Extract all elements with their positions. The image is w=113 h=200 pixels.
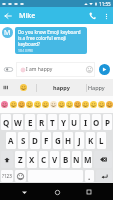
- button[interactable]: .: [85, 170, 94, 182]
- staticText: D: [32, 135, 38, 146]
- button[interactable]: H: [64, 132, 73, 149]
- staticText: K: [88, 135, 94, 146]
- button[interactable]: Y: [59, 114, 68, 130]
- staticText: Mike: [19, 11, 36, 21]
- staticText: T: [50, 117, 55, 128]
- button[interactable]: Shift: [1, 151, 13, 168]
- button[interactable]: Emoji: [97, 96, 105, 113]
- staticText: C: [41, 154, 47, 165]
- button[interactable]: Emoji: [25, 96, 33, 113]
- button[interactable]: Emoji: [15, 170, 26, 182]
- button[interactable]: Z: [15, 151, 25, 168]
- button[interactable]: Emoji: [57, 96, 65, 113]
- staticText: Y: [61, 117, 67, 128]
- button[interactable]: Emoji: [49, 96, 57, 113]
- button[interactable]: [11, 79, 36, 96]
- staticText: I am happy: [26, 66, 53, 73]
- button[interactable]: W: [13, 114, 23, 130]
- staticText: O: [93, 117, 100, 128]
- staticText: X: [29, 154, 35, 165]
- staticText: B: [63, 154, 69, 165]
- staticText: Do you know Emoji keyboard is a free col…: [18, 29, 81, 47]
- staticText: E: [28, 117, 33, 128]
- button[interactable]: O: [92, 114, 101, 130]
- button[interactable]: U: [70, 114, 79, 130]
- button[interactable]: More options: [100, 10, 112, 22]
- button[interactable]: Back: [16, 184, 32, 200]
- button[interactable]: Switch keyboard: [0, 60, 16, 79]
- staticText: I: [84, 117, 88, 128]
- staticText: F: [44, 135, 49, 146]
- button[interactable]: Emoji: [81, 96, 89, 113]
- staticText: 10:13 PM: [18, 48, 33, 53]
- staticText: ?123: [2, 173, 12, 179]
- button[interactable]: Emoji: [17, 96, 25, 113]
- button[interactable]: E: [25, 114, 35, 130]
- staticText: G: [55, 135, 61, 146]
- staticText: U: [71, 117, 78, 128]
- staticText: M: [84, 154, 92, 165]
- button[interactable]: Emoji: [73, 96, 81, 113]
- staticText: H: [65, 135, 72, 146]
- button[interactable]: Emoji: [9, 96, 17, 113]
- staticText: V: [52, 154, 58, 165]
- button[interactable]: S: [18, 132, 28, 149]
- staticText: .: [88, 171, 91, 182]
- button[interactable]: Emoji: [65, 96, 73, 113]
- button[interactable]: G: [53, 132, 62, 149]
- staticText: L: [99, 135, 104, 146]
- button[interactable]: Enter: [96, 170, 112, 182]
- button[interactable]: K: [86, 132, 95, 149]
- button[interactable]: V: [50, 151, 59, 168]
- button[interactable]: Backspace: [94, 151, 112, 168]
- button[interactable]: J: [75, 132, 84, 149]
- staticText: N: [73, 154, 80, 165]
- button[interactable]: D: [30, 132, 40, 149]
- staticText: happy: [53, 84, 70, 91]
- button[interactable]: Call: [85, 8, 100, 23]
- button[interactable]: Emoji: [0, 96, 9, 113]
- staticText: A: [8, 135, 14, 146]
- button[interactable]: F: [42, 132, 51, 149]
- button[interactable]: T: [48, 114, 57, 130]
- button[interactable]: Keyboard menu: [0, 79, 11, 96]
- button[interactable]: N: [72, 151, 81, 168]
- button[interactable]: Happy: [87, 79, 105, 96]
- staticText: 11:55: [99, 1, 111, 7]
- staticText: S: [21, 135, 26, 146]
- button[interactable]: P: [103, 114, 112, 130]
- button[interactable]: R: [37, 114, 46, 130]
- staticText: M: [4, 28, 11, 38]
- button[interactable]: M: [83, 151, 92, 168]
- button[interactable]: X: [27, 151, 37, 168]
- button[interactable]: Q: [1, 114, 11, 130]
- button[interactable]: Back: [0, 8, 16, 24]
- button[interactable]: A: [6, 132, 16, 149]
- staticText: P: [105, 117, 110, 128]
- button[interactable]: B: [61, 151, 70, 168]
- button[interactable]: Send: [99, 64, 110, 75]
- button[interactable]: Recent apps: [81, 184, 97, 200]
- staticText: R: [39, 117, 45, 128]
- button[interactable]: Emoji: [41, 96, 49, 113]
- staticText: Q: [3, 117, 10, 128]
- button[interactable]: I: [81, 114, 90, 130]
- button[interactable]: Home: [49, 184, 65, 200]
- button[interactable]: happy: [37, 79, 86, 96]
- button[interactable]: Emoji: [89, 96, 97, 113]
- staticText: W: [14, 117, 22, 128]
- staticText: Happy: [88, 84, 105, 91]
- button[interactable]: Emoji: [105, 96, 113, 113]
- staticText: J: [78, 135, 81, 146]
- button[interactable]: ?123: [1, 170, 13, 182]
- staticText: Z: [18, 154, 23, 165]
- button[interactable]: Emoji: [33, 96, 41, 113]
- button[interactable]: L: [97, 132, 106, 149]
- button[interactable]: C: [39, 151, 48, 168]
